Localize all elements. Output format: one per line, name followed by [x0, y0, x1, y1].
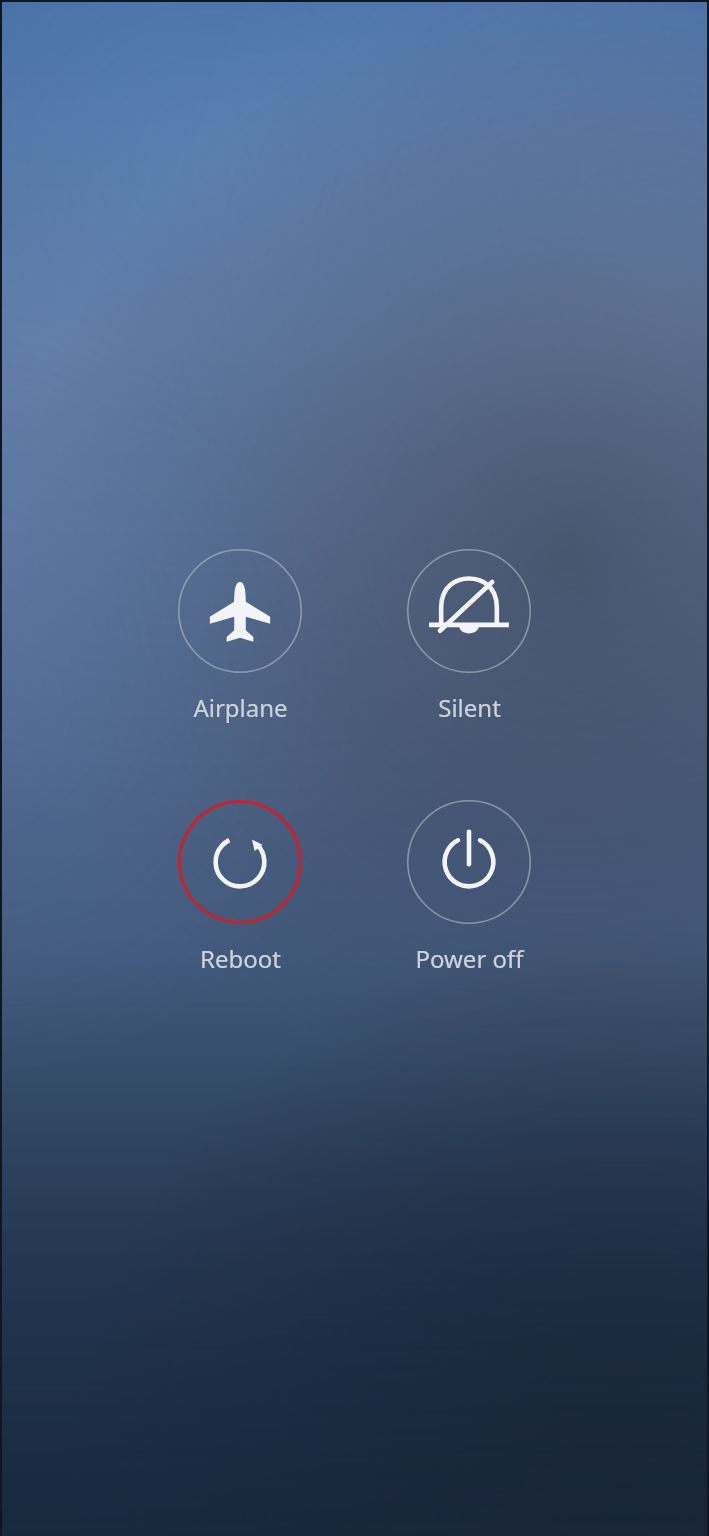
button[interactable]: Reboot — [178, 800, 302, 924]
button[interactable]: Power off — [407, 800, 531, 924]
button[interactable]: Airplane — [178, 549, 302, 673]
staticText: Power off — [415, 942, 524, 975]
button[interactable]: Silent — [407, 549, 531, 673]
staticText: Reboot — [200, 942, 281, 975]
staticText: Airplane — [193, 691, 288, 724]
staticText: Silent — [438, 691, 501, 724]
